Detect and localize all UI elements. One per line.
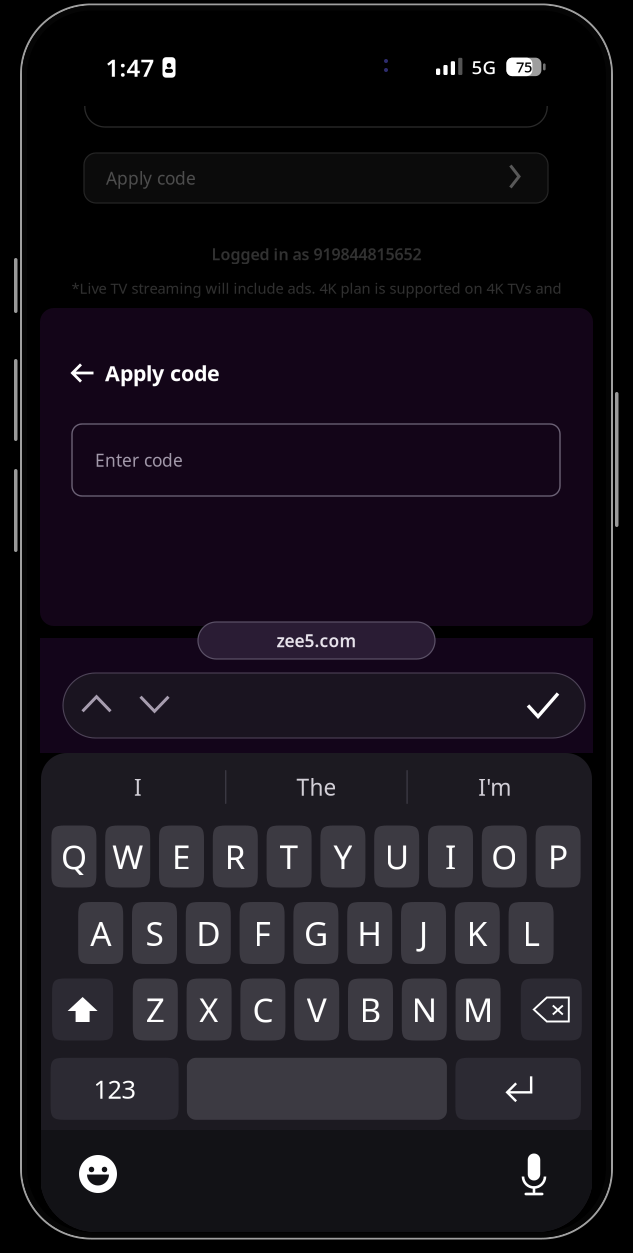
button[interactable]: L (509, 902, 554, 964)
staticText: O (491, 834, 517, 879)
staticText: X (199, 987, 219, 1032)
button[interactable]: O (482, 825, 527, 887)
staticText: G (304, 911, 328, 955)
staticText: 123 (94, 1072, 136, 1106)
staticText: 75 (516, 57, 532, 77)
button[interactable]: Z (133, 978, 178, 1040)
staticText: H (357, 911, 382, 955)
staticText: Y (333, 834, 352, 879)
staticText: S (145, 911, 163, 955)
staticText: L (523, 911, 540, 955)
staticText: Q (61, 834, 87, 879)
staticText: D (196, 911, 220, 955)
button[interactable]: Previous field (69, 673, 127, 738)
button[interactable]: X (187, 978, 232, 1040)
staticText: C (252, 987, 273, 1032)
staticText: T (280, 834, 299, 879)
button[interactable]: Done (525, 687, 561, 723)
button[interactable]: Delete (521, 978, 582, 1040)
button[interactable]: Apply code (84, 153, 548, 203)
button[interactable]: The (226, 767, 406, 807)
staticText: *Live TV streaming will include ads. 4K … (71, 278, 561, 298)
button[interactable]: D (186, 902, 231, 964)
staticText: W (112, 834, 143, 879)
staticText: U (385, 834, 409, 879)
staticText: E (172, 834, 191, 879)
button[interactable]: I'm (408, 767, 582, 807)
button[interactable]: E (159, 825, 204, 887)
button[interactable]: H (347, 902, 392, 964)
button[interactable]: Y (320, 825, 365, 887)
button[interactable]: Emoji (71, 1146, 125, 1202)
button[interactable]: C (240, 978, 285, 1040)
staticText: I (445, 834, 456, 879)
staticText: I'm (478, 772, 511, 802)
button[interactable]: T (267, 825, 312, 887)
staticText: I (134, 772, 142, 802)
staticText: M (463, 987, 493, 1032)
staticText: R (225, 834, 246, 879)
button[interactable]: G (293, 902, 338, 964)
button[interactable]: N (402, 978, 447, 1040)
staticText: 5G (471, 54, 496, 79)
staticText: V (307, 987, 327, 1032)
button[interactable]: Return (455, 1058, 581, 1120)
button[interactable]: Next field (127, 673, 185, 738)
button[interactable]: Apply code (40, 352, 330, 394)
staticText: P (548, 834, 568, 879)
button[interactable]: F (240, 902, 285, 964)
staticText: F (254, 911, 271, 955)
button[interactable]: W (105, 825, 150, 887)
button[interactable]: 123 (51, 1058, 179, 1120)
staticText: J (419, 911, 428, 955)
staticText: A (90, 911, 111, 955)
button[interactable]: V (294, 978, 339, 1040)
staticText: zee5.com (276, 629, 356, 652)
button[interactable]: A (78, 902, 123, 964)
staticText: Apply code (106, 166, 196, 189)
button[interactable]: I (428, 825, 473, 887)
staticText: Logged in as 919844815652 (211, 243, 421, 265)
button[interactable]: U (374, 825, 419, 887)
staticText: N (412, 987, 437, 1032)
staticText: Z (146, 987, 165, 1032)
button[interactable]: Dictate (512, 1146, 556, 1202)
button[interactable]: S (132, 902, 177, 964)
staticText: Apply code (105, 359, 220, 387)
button[interactable]: Shift (52, 978, 113, 1040)
button[interactable]: J (401, 902, 446, 964)
button[interactable]: R (213, 825, 258, 887)
button[interactable]: I (51, 767, 225, 807)
staticText: K (467, 911, 488, 955)
button[interactable]: P (536, 825, 581, 887)
button[interactable]: M (456, 978, 501, 1040)
button[interactable]: B (348, 978, 393, 1040)
button[interactable]: K (455, 902, 500, 964)
staticText: Enter code (95, 448, 183, 471)
button[interactable]: Q (51, 825, 96, 887)
staticText: B (359, 987, 381, 1032)
staticText: The (296, 772, 336, 802)
staticText: 1:47 (105, 51, 154, 83)
